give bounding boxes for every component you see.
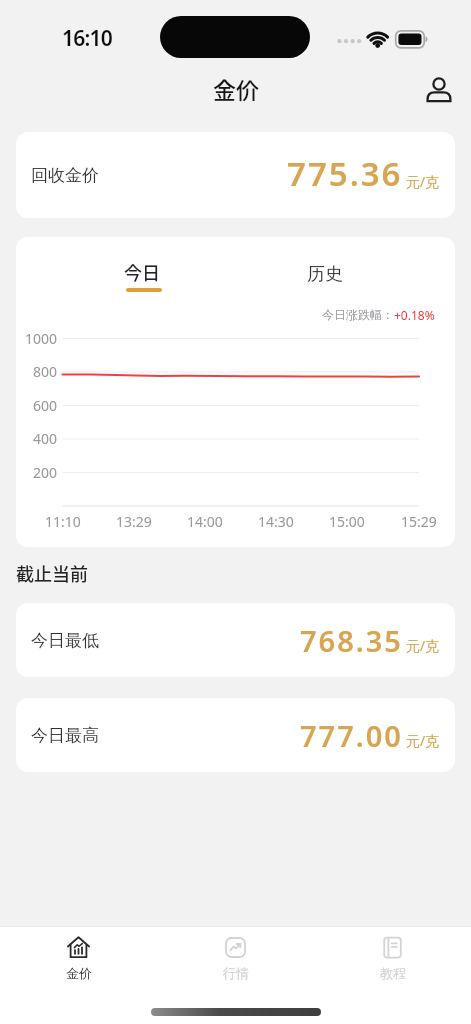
- staticText: 13:29: [116, 512, 152, 531]
- staticText: 历史: [307, 263, 343, 286]
- staticText: 回收金价: [31, 165, 99, 186]
- staticText: 元/克: [406, 636, 440, 655]
- staticText: 今日最低: [31, 630, 99, 651]
- button[interactable]: 金价: [0, 935, 157, 981]
- staticText: 200: [33, 463, 58, 482]
- staticText: 768.35: [300, 621, 403, 660]
- staticText: 11:10: [45, 512, 81, 531]
- button[interactable]: 今日: [112, 259, 172, 299]
- staticText: 今日涨跌幅：: [322, 307, 394, 322]
- staticText: 截止当前: [16, 560, 88, 586]
- staticText: 777.00: [300, 716, 403, 755]
- button[interactable]: 回收金价: [16, 132, 455, 218]
- button[interactable]: 行情: [157, 935, 314, 981]
- button[interactable]: 今日最高: [16, 698, 455, 772]
- staticText: 行情: [223, 965, 249, 981]
- staticText: 金价: [66, 965, 92, 981]
- staticText: 15:29: [401, 512, 437, 531]
- staticText: 14:30: [258, 512, 294, 531]
- button[interactable]: 今日最低: [16, 603, 455, 677]
- staticText: 600: [33, 396, 58, 415]
- staticText: 800: [33, 362, 58, 381]
- button[interactable]: 历史: [295, 263, 355, 303]
- staticText: 元/克: [406, 172, 440, 191]
- button[interactable]: 教程: [314, 935, 471, 981]
- button[interactable]: [423, 74, 455, 106]
- staticText: 金价: [213, 72, 259, 105]
- staticText: 元/克: [406, 731, 440, 750]
- staticText: 今日最高: [31, 725, 99, 746]
- staticText: 今日: [124, 259, 160, 285]
- staticText: 400: [33, 429, 58, 448]
- staticText: +0.18%: [394, 307, 435, 323]
- staticText: 15:00: [329, 512, 365, 531]
- staticText: 1000: [25, 329, 58, 348]
- staticText: 775.36: [287, 151, 403, 196]
- staticText: 教程: [380, 965, 406, 981]
- staticText: 16:10: [62, 24, 112, 46]
- staticText: 14:00: [187, 512, 223, 531]
